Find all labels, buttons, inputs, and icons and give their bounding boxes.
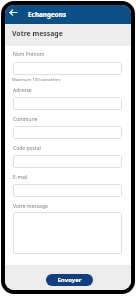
staticText: Votre message bbox=[13, 203, 48, 210]
staticText: Nom Prénom bbox=[13, 51, 45, 58]
staticText: Votre message bbox=[12, 29, 63, 38]
button[interactable] bbox=[13, 62, 122, 75]
staticText: Envoyer bbox=[57, 276, 82, 284]
staticText: Echangeons bbox=[28, 10, 67, 19]
staticText: Adresse bbox=[13, 87, 32, 94]
staticText: Commune bbox=[13, 116, 38, 123]
button[interactable] bbox=[13, 212, 122, 254]
staticText: E-mail bbox=[13, 174, 28, 181]
button[interactable]: Envoyer bbox=[46, 274, 93, 286]
button[interactable] bbox=[13, 184, 122, 197]
button[interactable] bbox=[13, 97, 122, 110]
button[interactable] bbox=[13, 126, 122, 139]
staticText: Maximum 100 caractères bbox=[12, 77, 61, 83]
button[interactable]: Back bbox=[8, 7, 19, 18]
staticText: Code postal bbox=[13, 145, 41, 152]
button[interactable] bbox=[13, 155, 122, 168]
